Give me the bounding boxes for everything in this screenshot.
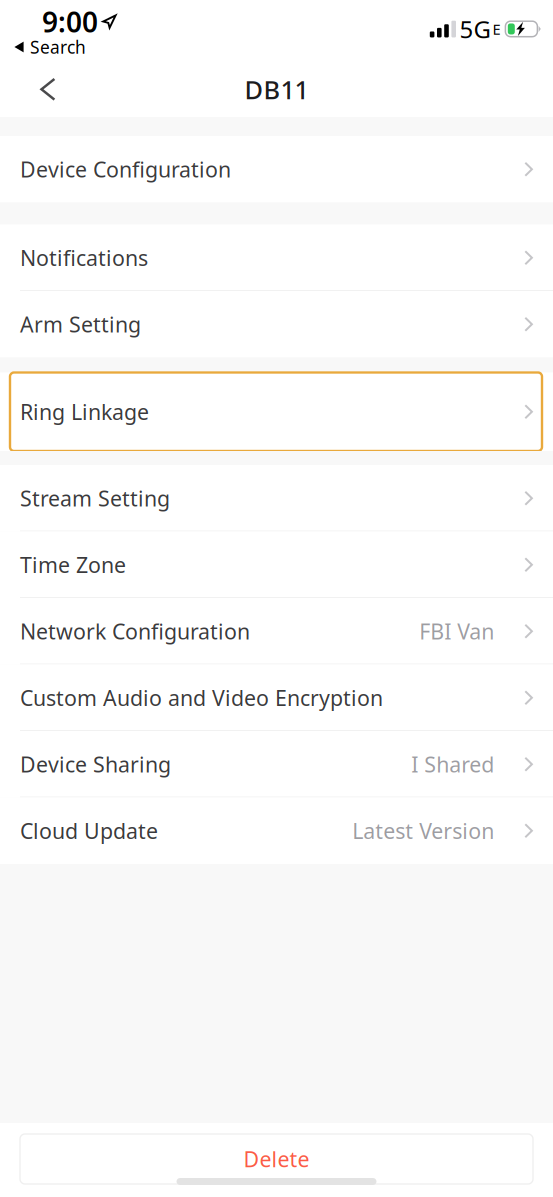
staticText: E [492, 19, 500, 39]
button[interactable]: Arm Setting [0, 291, 553, 357]
button[interactable]: Back [0, 62, 96, 117]
button[interactable]: Device Sharing [0, 731, 553, 797]
staticText: Stream Setting [20, 484, 170, 512]
staticText: Device Sharing [20, 750, 171, 778]
staticText: Notifications [20, 244, 148, 272]
staticText: Custom Audio and Video Encryption [20, 684, 383, 712]
staticText: FBI Van [419, 617, 494, 645]
button[interactable]: Custom Audio and Video Encryption [0, 664, 553, 731]
staticText: Latest Version [352, 817, 494, 845]
staticText: 5G [459, 13, 490, 45]
staticText: 9:00 [42, 3, 98, 40]
button[interactable]: Delete [20, 1134, 533, 1184]
staticText: Arm Setting [20, 310, 141, 338]
staticText: Cloud Update [20, 817, 158, 845]
staticText: Delete [243, 1145, 309, 1173]
staticText: I Shared [411, 750, 494, 778]
staticText: Ring Linkage [20, 398, 149, 426]
staticText: Device Configuration [20, 155, 231, 183]
button[interactable]: Time Zone [0, 531, 553, 598]
button[interactable]: Notifications [0, 224, 553, 291]
button[interactable]: Ring Linkage [0, 372, 553, 451]
button[interactable]: Search [0, 37, 86, 57]
staticText: Network Configuration [20, 617, 250, 645]
staticText: DB11 [244, 73, 308, 106]
button[interactable]: Device Configuration [0, 136, 553, 202]
staticText: Search [30, 35, 86, 58]
button[interactable]: Stream Setting [0, 465, 553, 531]
button[interactable]: Cloud Update [0, 797, 553, 864]
staticText: Time Zone [20, 551, 126, 579]
button[interactable]: Network Configuration [0, 598, 553, 664]
